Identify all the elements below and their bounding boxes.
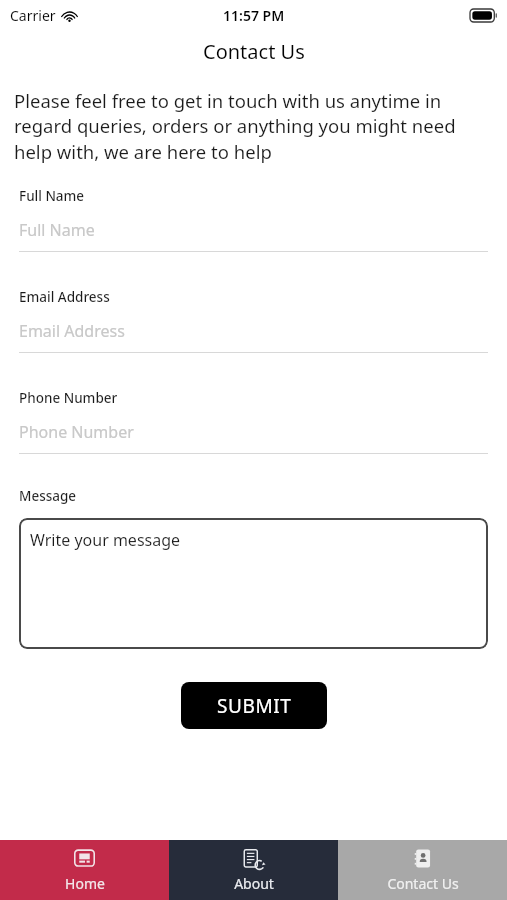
button[interactable]: About — [169, 840, 338, 900]
button[interactable]: Home — [0, 840, 169, 900]
staticText: Home — [65, 874, 105, 893]
staticText: Email Address — [19, 288, 110, 306]
staticText: Contact Us — [387, 874, 459, 893]
staticText: Message — [19, 487, 77, 505]
button[interactable]: Write your message — [19, 518, 488, 649]
staticText: Please feel free to get in touch with us… — [14, 88, 493, 165]
staticText: 11:57 PM — [223, 6, 285, 25]
button[interactable]: Phone Number — [0, 389, 507, 454]
button[interactable]: SUBMIT — [181, 682, 327, 729]
staticText: About — [234, 874, 274, 893]
staticText: SUBMIT — [217, 693, 292, 719]
button[interactable]: Full Name — [0, 187, 507, 252]
staticText: Full Name — [19, 187, 85, 205]
staticText: Write your message — [30, 529, 181, 551]
staticText: Full Name — [19, 219, 95, 241]
button[interactable]: Email Address — [0, 288, 507, 353]
staticText: Phone Number — [19, 389, 118, 407]
button[interactable]: Contact Us — [338, 840, 507, 900]
staticText: Email Address — [19, 320, 125, 342]
staticText: Phone Number — [19, 421, 134, 443]
staticText: Contact Us — [203, 38, 305, 65]
staticText: Carrier — [10, 6, 56, 25]
